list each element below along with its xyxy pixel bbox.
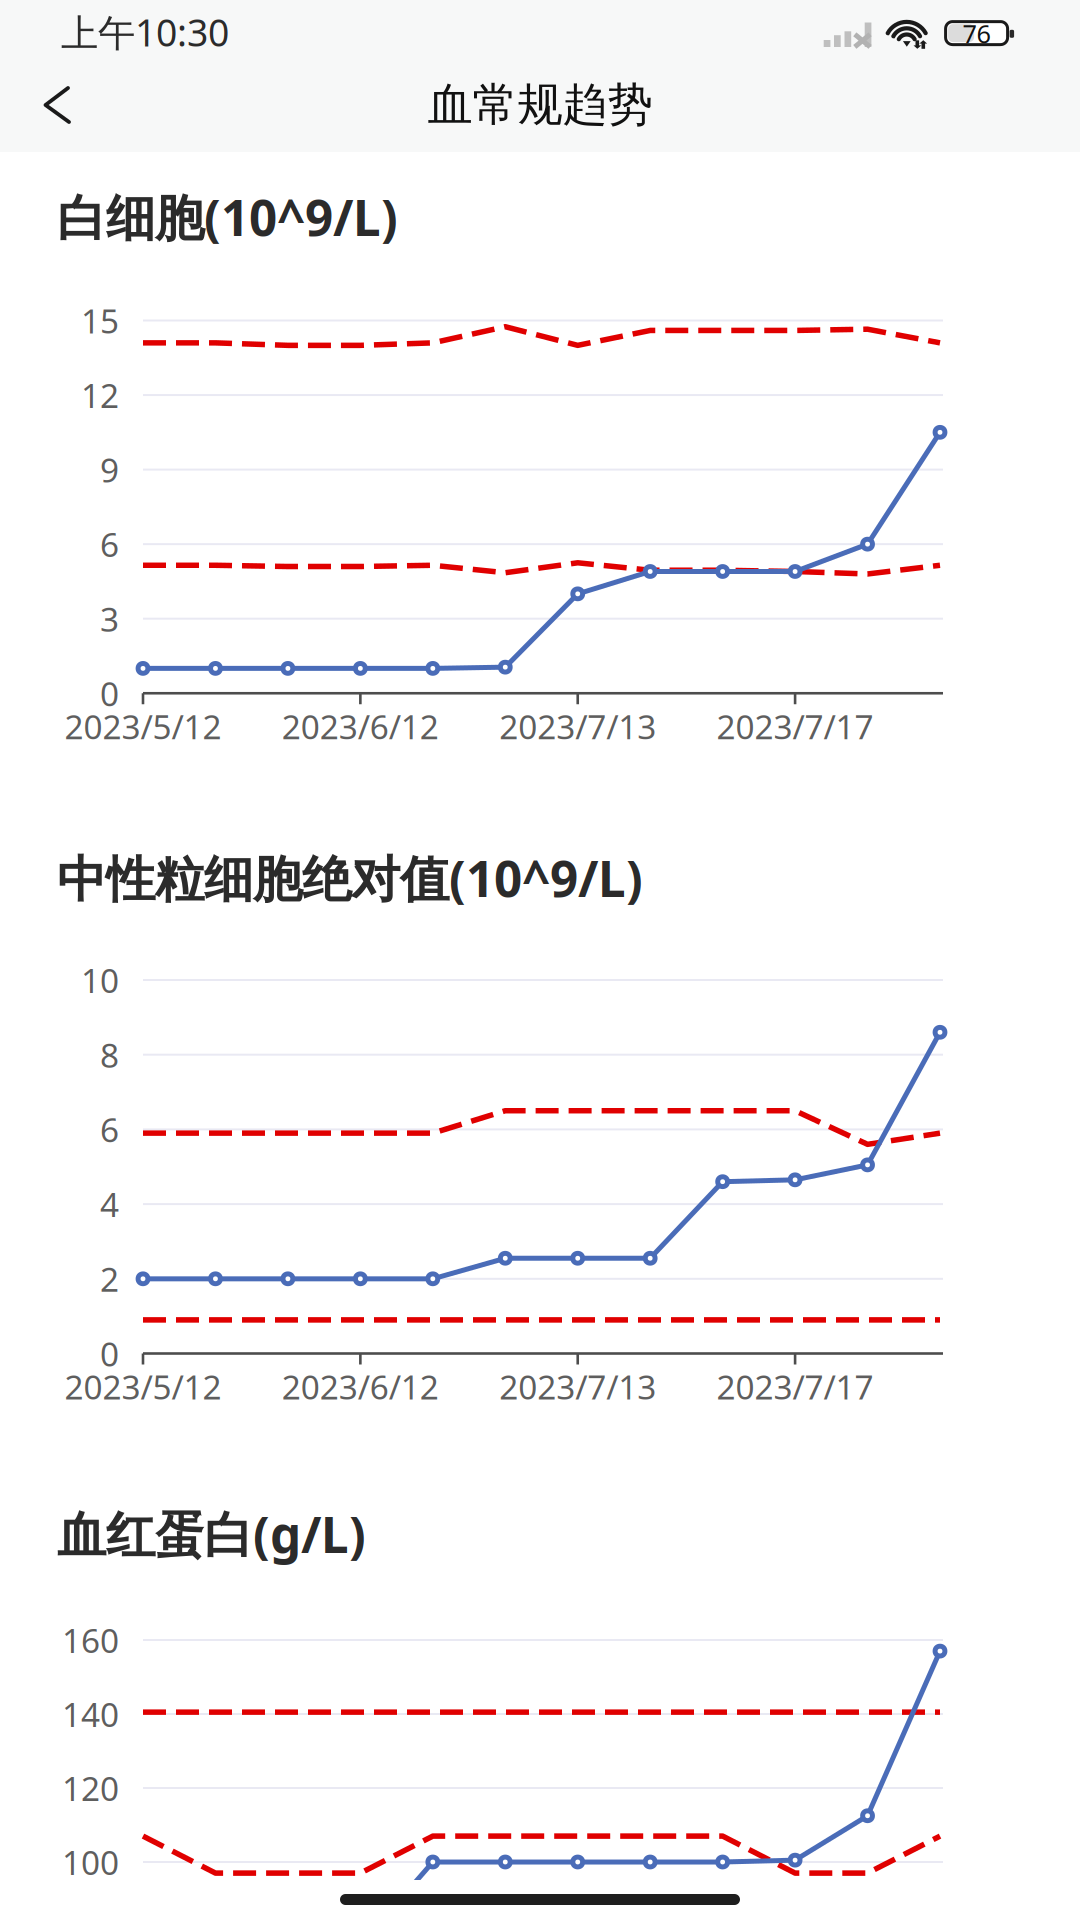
staticText: 中性粒细胞绝对值(10^9/L): [57, 845, 643, 910]
staticText: 2023/7/13: [499, 704, 656, 748]
staticText: 血红蛋白(g/L): [57, 1501, 366, 1566]
staticText: 4: [100, 1182, 119, 1226]
staticText: 10: [81, 958, 119, 1002]
staticText: 2023/7/17: [717, 1364, 874, 1409]
staticText: 0: [100, 1331, 119, 1376]
staticText: 2023/6/12: [282, 1364, 439, 1409]
staticText: 140: [62, 1692, 119, 1736]
staticText: 120: [62, 1766, 119, 1810]
staticText: 100: [62, 1840, 119, 1884]
staticText: 160: [62, 1618, 119, 1662]
staticText: 2023/7/13: [499, 1364, 656, 1409]
staticText: 血常规趋势: [427, 77, 652, 133]
staticText: 15: [81, 298, 119, 343]
staticText: 6: [100, 522, 119, 566]
staticText: 6: [100, 1107, 119, 1152]
staticText: 白细胞(10^9/L): [57, 184, 398, 249]
staticText: 2: [100, 1257, 119, 1301]
staticText: 76: [963, 17, 991, 50]
button[interactable]: Back: [0, 72, 106, 152]
staticText: 2023/5/12: [64, 704, 221, 748]
staticText: 8: [100, 1033, 119, 1077]
staticText: 0: [100, 671, 119, 715]
staticText: 2023/5/12: [64, 1364, 221, 1409]
staticText: 12: [81, 373, 119, 417]
staticText: 3: [100, 597, 119, 641]
staticText: 9: [100, 447, 119, 492]
staticText: 2023/6/12: [282, 704, 439, 748]
staticText: 2023/7/17: [717, 704, 874, 748]
staticText: 上午10:30: [61, 7, 229, 57]
